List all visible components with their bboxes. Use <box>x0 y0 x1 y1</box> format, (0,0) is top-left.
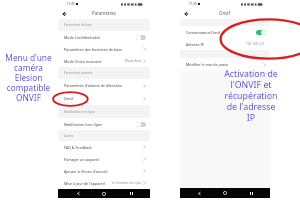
staticText: Mode Confidentialité <box>64 35 101 40</box>
button[interactable]: Paramètres des fonctions de base <box>58 43 150 55</box>
button[interactable]: Back <box>192 188 206 198</box>
button[interactable]: Paramètres d'alarme de détection <box>58 79 150 92</box>
button[interactable]: Ajouter à l'écran d'accueil <box>58 165 150 177</box>
staticText: Onvif <box>64 96 74 101</box>
staticText: Activation de l'ONVIF et récupération de… <box>203 68 299 124</box>
button[interactable]: Home <box>218 188 232 198</box>
staticText: 11:26 <box>189 2 197 6</box>
button[interactable]: Mode Confidentialité <box>58 31 150 43</box>
staticText: Paramètres <box>92 10 116 16</box>
button[interactable]: Partager un appareil <box>58 153 150 165</box>
button[interactable]: Modifier le mot de passe <box>180 58 270 71</box>
button[interactable] <box>136 35 146 40</box>
staticText: Adresse IP <box>186 42 205 47</box>
staticText: FAQ & Feedback <box>64 145 92 150</box>
button[interactable]: Back <box>71 189 85 198</box>
button[interactable]: Recents <box>124 189 138 198</box>
staticText: Autres <box>64 134 74 138</box>
staticText: Paramètres d'alarme de détection <box>64 83 123 88</box>
staticText: Partager un appareil <box>64 157 100 162</box>
staticText: 192.168.1.31 <box>246 42 265 46</box>
staticText: Paramètres avancés <box>64 71 93 75</box>
button[interactable]: Home <box>97 189 111 198</box>
button[interactable]: Commutateur Onvif <box>180 26 270 38</box>
staticText: Paramètres de base <box>64 23 93 27</box>
staticText: Mode Vision nocturne <box>64 59 102 64</box>
button[interactable]: Adresse IP <box>180 38 270 50</box>
button[interactable]: FAQ & Feedback <box>58 141 150 153</box>
button[interactable]: Back <box>183 10 190 17</box>
button[interactable]: Mode Vision nocturne <box>58 55 150 67</box>
button[interactable]: Recents <box>244 188 258 198</box>
staticText: Commutateur Onvif <box>186 30 221 35</box>
button[interactable] <box>256 30 266 35</box>
staticText: Onvif <box>219 10 231 16</box>
button[interactable]: Back <box>61 10 68 17</box>
staticText: Le firmware est à jour <box>112 181 142 185</box>
staticText: Notification hors ligne <box>64 122 103 127</box>
staticText: Ajouter à l'écran d'accueil <box>64 169 108 174</box>
button[interactable]: Notification hors ligne <box>58 118 150 130</box>
staticText: Modifier le mot de passe <box>186 62 229 67</box>
staticText: Notification hors ligne <box>64 110 96 114</box>
button[interactable]: Mise à jour de l'appareil <box>58 177 150 189</box>
button[interactable]: Onvif <box>58 92 150 105</box>
button[interactable] <box>136 122 146 127</box>
staticText: Mode Auto <box>125 59 142 63</box>
staticText: Paramètres des fonctions de base <box>64 47 123 52</box>
staticText: Menu d'une caméra Elesion compatible ONV… <box>1 52 56 103</box>
staticText: Mise à jour de l'appareil <box>64 181 105 186</box>
staticText: 11:25 <box>67 2 75 6</box>
